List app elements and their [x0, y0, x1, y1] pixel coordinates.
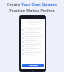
button[interactable]	[22, 52, 44, 55]
button[interactable]	[22, 44, 44, 47]
button[interactable]: Create Your Own Quizzes	[2, 2, 62, 13]
staticText: Create Your Own Quizzes	[2, 2, 62, 7]
button[interactable]	[22, 32, 44, 35]
button[interactable]	[22, 48, 44, 51]
button[interactable]: Quiz app preview on phone	[19, 15, 46, 72]
button[interactable]	[22, 28, 44, 31]
button[interactable]: Create quiz	[22, 64, 44, 67]
staticText: Practice Makes Perfect	[2, 8, 62, 13]
button[interactable]	[22, 36, 44, 39]
button[interactable]	[22, 40, 44, 43]
